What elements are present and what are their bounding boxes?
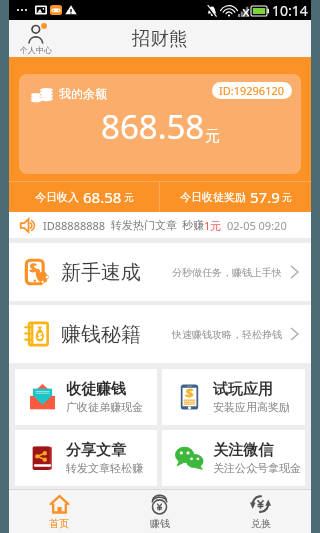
button[interactable]: 新手速成	[9, 243, 311, 301]
staticText: 10:14	[272, 1, 308, 20]
button[interactable]: 个人中心	[17, 23, 55, 55]
staticText: 关注微信	[213, 441, 273, 460]
staticText: 转发文章轻松赚	[66, 461, 143, 475]
button[interactable]: 收徒赚钱	[15, 369, 157, 425]
staticText: 兑换	[251, 517, 271, 530]
staticText: 今日收徒奖励	[180, 190, 246, 204]
button[interactable]: 今日收入	[9, 182, 159, 212]
staticText: 广收徒弟赚现金	[66, 400, 143, 414]
staticText: 收徒赚钱	[66, 380, 126, 399]
staticText: 57.9	[250, 187, 280, 207]
staticText: 新手速成	[61, 260, 141, 285]
staticText: 快速赚钱攻略，轻松挣钱	[172, 328, 282, 341]
button[interactable]: 试玩应用	[162, 369, 305, 425]
staticText: 赚钱	[150, 517, 170, 530]
staticText: ID:19296120	[219, 83, 285, 98]
staticText: 秒赚	[182, 218, 204, 232]
button[interactable]: 赚钱	[109, 490, 210, 533]
staticText: 02-05 09:20	[227, 218, 287, 233]
button[interactable]: 赚钱秘籍	[9, 305, 311, 363]
staticText: 转发热门文章	[111, 218, 177, 232]
staticText: 赚钱秘籍	[61, 322, 141, 347]
staticText: 关注公众号拿现金	[213, 461, 301, 475]
staticText: 我的余额	[59, 86, 107, 101]
staticText: 个人中心	[20, 45, 52, 55]
staticText: 首页	[49, 517, 69, 530]
button[interactable]: 兑换	[210, 490, 311, 533]
staticText: 招财熊	[132, 27, 188, 50]
staticText: 安装应用高奖励	[213, 400, 290, 414]
staticText: 1元	[204, 218, 222, 233]
staticText: 今日收入	[35, 190, 79, 204]
staticText: 试玩应用	[213, 380, 273, 399]
staticText: 68.58	[83, 187, 122, 207]
button[interactable]: 关注微信	[162, 430, 305, 486]
button[interactable]: ID88888888	[9, 212, 311, 238]
button[interactable]: 分享文章	[15, 430, 157, 486]
staticText: 分秒做任务，赚钱上手快	[172, 266, 282, 279]
staticText: ID88888888	[43, 218, 106, 233]
button[interactable]: 今日收徒奖励	[160, 182, 311, 212]
staticText: 元	[205, 127, 220, 146]
staticText: 元	[124, 191, 134, 204]
staticText: 868.58	[101, 104, 205, 149]
staticText: 元	[282, 191, 292, 204]
button[interactable]: 首页	[9, 490, 109, 533]
staticText: 分享文章	[66, 441, 126, 460]
